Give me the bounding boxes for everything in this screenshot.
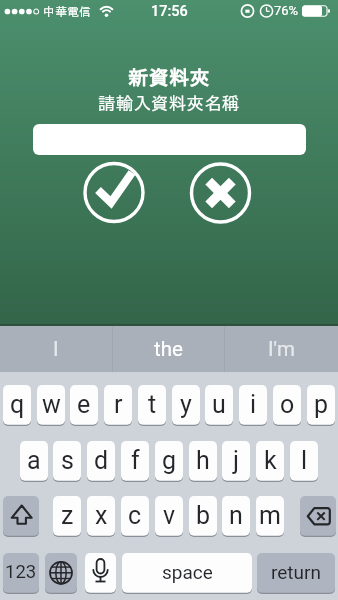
button[interactable]: return bbox=[257, 553, 335, 594]
staticText: p bbox=[314, 390, 329, 419]
button[interactable]: x bbox=[87, 496, 115, 537]
button[interactable]: v bbox=[155, 496, 183, 537]
staticText: c bbox=[128, 501, 142, 530]
button[interactable]: g bbox=[155, 441, 183, 482]
staticText: x bbox=[95, 501, 108, 530]
staticText: l bbox=[301, 446, 308, 475]
staticText: e bbox=[77, 390, 91, 419]
staticText: I'm bbox=[268, 337, 295, 361]
button[interactable] bbox=[191, 164, 249, 222]
staticText: space bbox=[162, 561, 213, 583]
button[interactable] bbox=[85, 163, 143, 221]
staticText: f bbox=[131, 446, 140, 475]
staticText: 新資料夾 bbox=[128, 67, 210, 87]
staticText: w bbox=[42, 390, 61, 419]
staticText: 中華電信 bbox=[43, 5, 91, 17]
button[interactable] bbox=[45, 553, 77, 594]
button[interactable]: d bbox=[87, 441, 115, 482]
staticText: I bbox=[53, 337, 59, 361]
staticText: s bbox=[61, 446, 74, 475]
button[interactable]: 123 bbox=[3, 553, 39, 594]
staticText: i bbox=[250, 390, 257, 419]
button[interactable]: the bbox=[113, 326, 224, 372]
staticText: n bbox=[229, 501, 243, 530]
button[interactable]: q bbox=[3, 385, 31, 426]
staticText: o bbox=[280, 390, 295, 419]
staticText: 76% bbox=[274, 3, 299, 18]
button[interactable] bbox=[33, 124, 306, 155]
button[interactable]: r bbox=[104, 385, 132, 426]
staticText: d bbox=[94, 446, 109, 475]
button[interactable]: k bbox=[256, 441, 284, 482]
staticText: k bbox=[264, 446, 277, 475]
staticText: u bbox=[212, 390, 226, 419]
button[interactable] bbox=[85, 553, 116, 594]
staticText: t bbox=[148, 390, 157, 419]
button[interactable]: h bbox=[189, 441, 217, 482]
button[interactable]: z bbox=[53, 496, 81, 537]
button[interactable]: w bbox=[37, 385, 65, 426]
button[interactable]: f bbox=[121, 441, 149, 482]
staticText: 123 bbox=[5, 561, 37, 583]
staticText: z bbox=[61, 501, 74, 530]
staticText: 請輸入資料夾名稱 bbox=[98, 94, 240, 112]
button[interactable]: o bbox=[273, 385, 301, 426]
staticText: m bbox=[259, 501, 281, 530]
staticText: return bbox=[271, 561, 321, 583]
button[interactable]: space bbox=[122, 553, 252, 594]
button[interactable]: u bbox=[205, 385, 233, 426]
staticText: y bbox=[180, 390, 192, 419]
button[interactable]: I'm bbox=[225, 326, 337, 372]
staticText: 17:56 bbox=[151, 3, 188, 20]
staticText: v bbox=[163, 501, 176, 530]
staticText: b bbox=[196, 501, 211, 530]
button[interactable]: i bbox=[239, 385, 267, 426]
button[interactable]: j bbox=[222, 441, 250, 482]
button[interactable]: m bbox=[256, 496, 284, 537]
staticText: a bbox=[27, 446, 41, 475]
button[interactable]: p bbox=[307, 385, 335, 426]
staticText: g bbox=[162, 446, 177, 475]
button[interactable]: e bbox=[70, 385, 98, 426]
button[interactable] bbox=[300, 496, 336, 537]
staticText: h bbox=[196, 446, 210, 475]
staticText: r bbox=[114, 390, 123, 419]
button[interactable]: c bbox=[121, 496, 149, 537]
button[interactable]: s bbox=[53, 441, 81, 482]
staticText: q bbox=[10, 390, 25, 419]
button[interactable]: n bbox=[222, 496, 250, 537]
button[interactable]: t bbox=[138, 385, 166, 426]
staticText: j bbox=[233, 446, 239, 475]
button[interactable]: b bbox=[189, 496, 217, 537]
staticText: the bbox=[154, 337, 183, 361]
button[interactable]: I bbox=[0, 326, 112, 372]
button[interactable]: y bbox=[172, 385, 200, 426]
button[interactable]: a bbox=[20, 441, 48, 482]
button[interactable] bbox=[3, 496, 39, 537]
button[interactable]: l bbox=[290, 441, 318, 482]
